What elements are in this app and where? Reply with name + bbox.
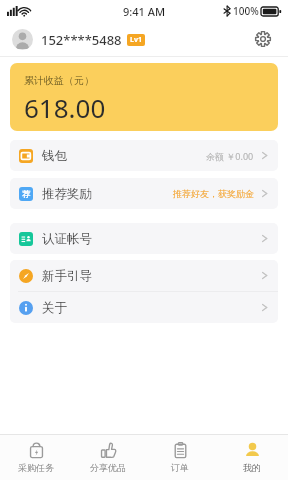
staticText: 推荐好友，获奖励金 (173, 188, 254, 199)
button[interactable]: 认证帐号 (10, 223, 278, 254)
staticText: 152****5488 (41, 31, 122, 49)
staticText: 9:41 AM (123, 4, 166, 19)
staticText: Lv1 (130, 35, 142, 45)
staticText: 累计收益（元） (24, 74, 94, 87)
button[interactable]: 分享优品 (72, 435, 144, 480)
button[interactable]: 钱包 (10, 140, 278, 171)
staticText: 分享优品 (90, 462, 126, 473)
button[interactable]: 我的 (216, 435, 288, 480)
staticText: 荐 (22, 189, 30, 199)
staticText: 100% (233, 4, 259, 18)
button[interactable]: 累计收益（元） (10, 63, 278, 131)
staticText: 认证帐号 (42, 231, 92, 247)
button[interactable]: 采购任务 (0, 435, 72, 480)
staticText: 钱包 (42, 148, 67, 164)
staticText: 关于 (42, 300, 67, 316)
staticText: 采购任务 (18, 462, 54, 473)
staticText: 订单 (171, 462, 189, 473)
button[interactable]: 荐 (10, 178, 278, 209)
staticText: 新手引导 (42, 268, 92, 284)
staticText: 余额 ￥0.00 (206, 150, 254, 162)
staticText: 推荐奖励 (42, 186, 92, 202)
button[interactable]: Settings (250, 26, 276, 52)
button[interactable]: 152****5488 (12, 29, 250, 50)
button[interactable]: 关于 (10, 292, 278, 323)
button[interactable]: 新手引导 (10, 260, 278, 291)
staticText: 618.00 (24, 90, 106, 125)
staticText: 我的 (243, 462, 261, 473)
button[interactable]: 订单 (144, 435, 216, 480)
